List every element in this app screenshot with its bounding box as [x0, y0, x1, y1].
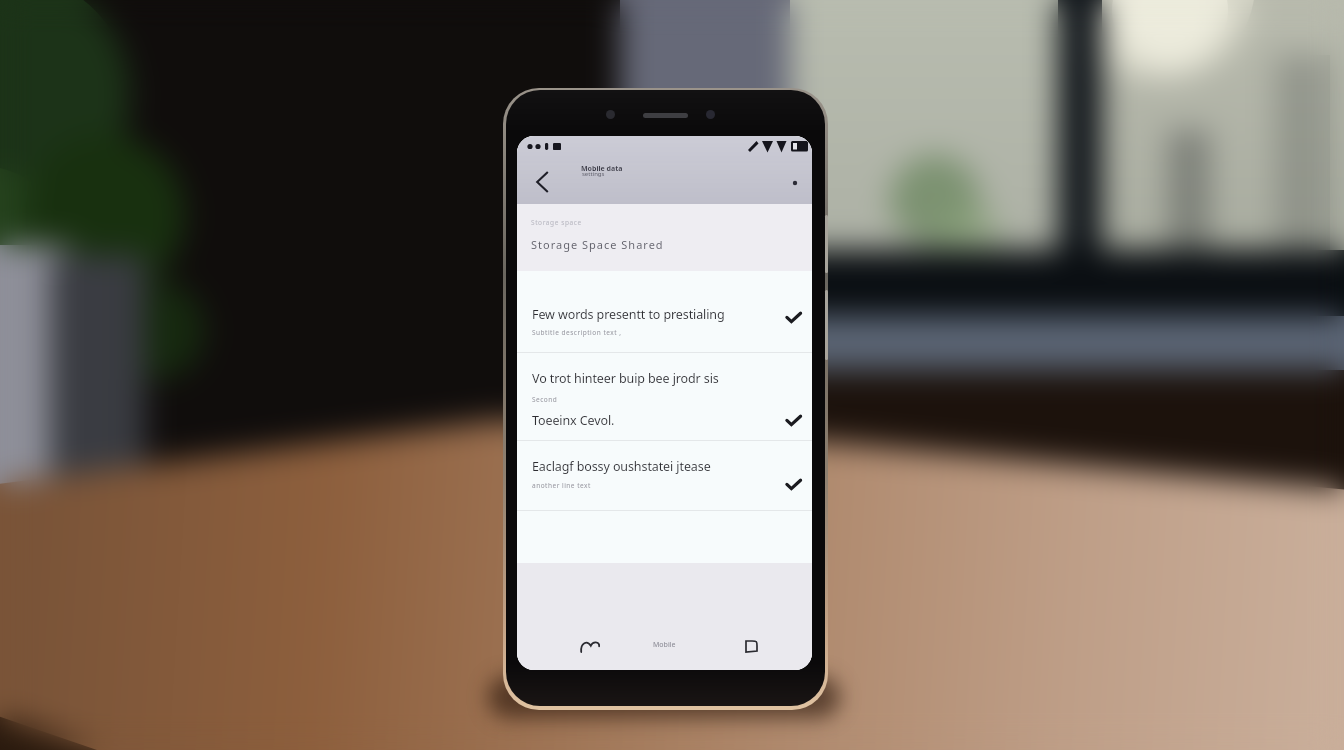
button[interactable]: Back	[526, 166, 558, 198]
staticText: Toeeinx Cevol.	[532, 412, 615, 429]
button[interactable]: Mobile	[634, 635, 694, 655]
staticText: Mobile data	[581, 164, 623, 174]
staticText: settings	[582, 170, 605, 178]
staticText: Second	[532, 395, 558, 404]
staticText: another line text	[532, 481, 591, 490]
button[interactable]: Vo trot hinteer buip bee jrodr sis	[517, 353, 812, 440]
staticText: Storage Space Shared	[531, 237, 664, 252]
staticText: Few words presentt to prestialing	[532, 306, 725, 323]
staticText: Subtitle description text ,	[532, 328, 622, 337]
staticText: Eaclagf bossy oushstatei jtease	[532, 458, 711, 475]
button[interactable]: Recent apps	[737, 634, 765, 658]
button[interactable]: Eaclagf bossy oushstatei jtease	[517, 441, 812, 510]
button[interactable]: More options	[784, 172, 806, 194]
staticText: Storage space	[531, 218, 582, 227]
button[interactable]: Back	[575, 633, 605, 657]
staticText: Mobile	[653, 640, 676, 650]
staticText: Vo trot hinteer buip bee jrodr sis	[532, 370, 719, 387]
button[interactable]: Few words presentt to prestialing	[517, 271, 812, 352]
